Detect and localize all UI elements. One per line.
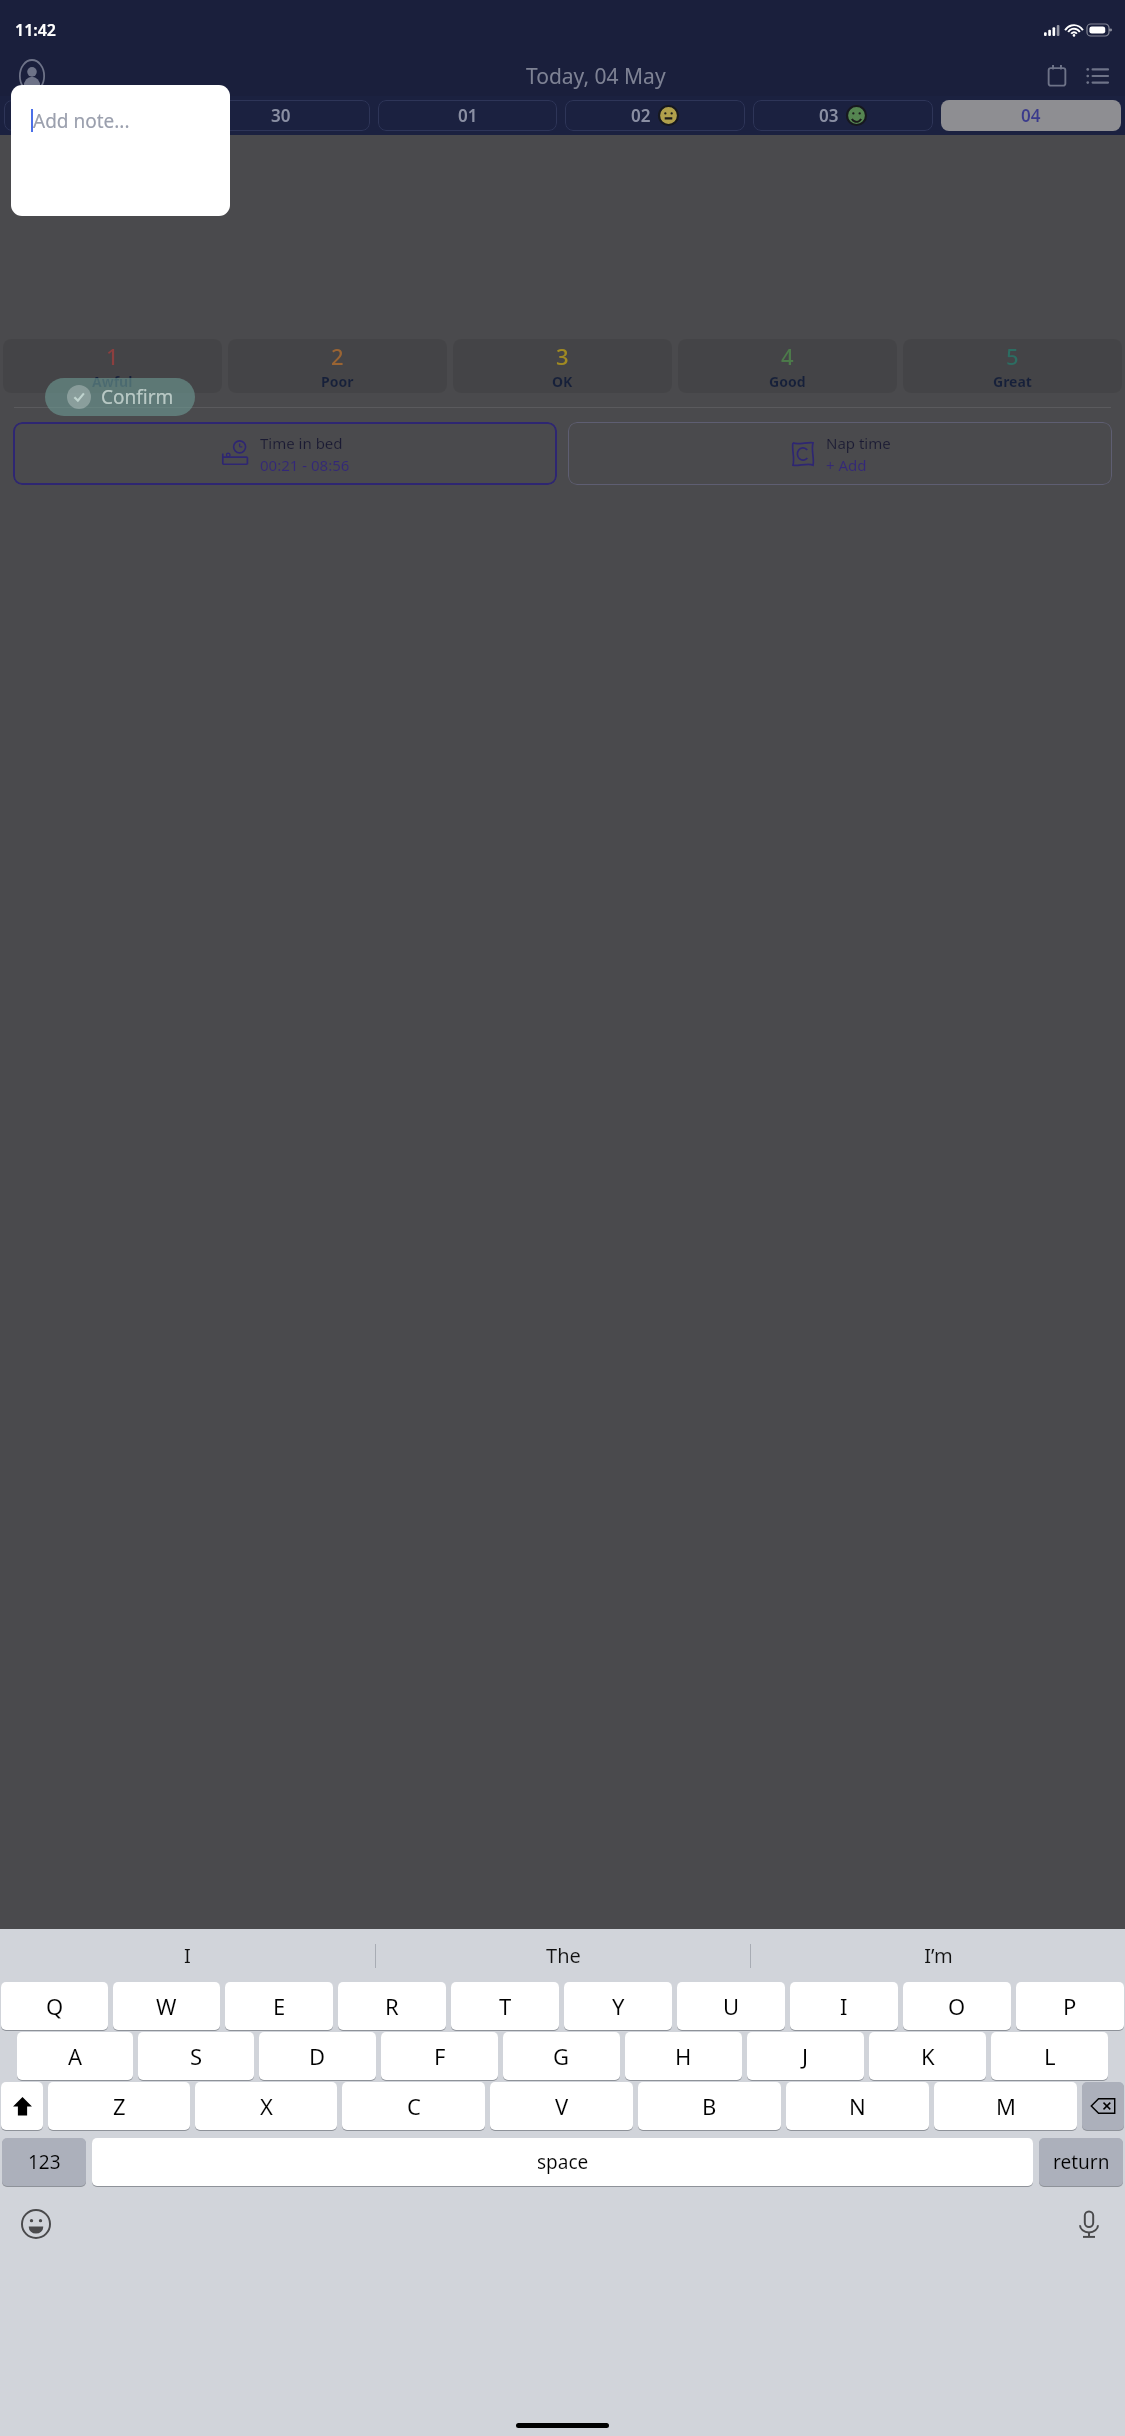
button[interactable]: 5 <box>903 339 1122 393</box>
staticText: S <box>190 2041 203 2071</box>
staticText: D <box>309 2041 326 2071</box>
button[interactable]: C <box>342 2082 485 2130</box>
staticText: Good <box>769 372 806 391</box>
button[interactable]: I’m <box>751 1929 1125 1982</box>
staticText: X <box>260 2091 273 2121</box>
staticText: G <box>553 2041 570 2071</box>
staticText: I’m <box>924 1942 953 1969</box>
staticText: T <box>499 1991 512 2021</box>
staticText: 29 <box>84 104 104 127</box>
button[interactable]: Confirm <box>45 378 195 416</box>
button[interactable]: The <box>376 1929 750 1982</box>
button[interactable]: N <box>786 2082 929 2130</box>
staticText: O <box>948 1991 966 2021</box>
button[interactable]: 04 <box>941 100 1121 131</box>
staticText: E <box>273 1991 286 2021</box>
staticText: 01 <box>458 104 478 127</box>
staticText: Confirm <box>101 384 174 410</box>
staticText: Awful <box>92 372 133 391</box>
staticText: U <box>723 1991 740 2021</box>
staticText: L <box>1044 2041 1056 2071</box>
staticText: 03 <box>819 104 839 127</box>
button[interactable]: Shift <box>1 2082 43 2130</box>
staticText: Great <box>993 372 1032 391</box>
button[interactable]: V <box>490 2082 633 2130</box>
staticText: The <box>546 1942 581 1969</box>
button[interactable]: P <box>1016 1982 1124 2030</box>
button[interactable]: A <box>17 2032 133 2080</box>
button[interactable]: H <box>625 2032 742 2080</box>
button[interactable]: 3 <box>453 339 672 393</box>
button[interactable]: K <box>869 2032 986 2080</box>
staticText: + Add <box>826 455 867 475</box>
button[interactable]: Add note... <box>11 85 230 216</box>
button[interactable]: 1 <box>3 339 222 393</box>
staticText: H <box>675 2041 692 2071</box>
button[interactable]: 01 <box>378 100 557 131</box>
staticText: return <box>1053 2149 1110 2175</box>
button[interactable]: 03 <box>753 100 933 131</box>
button[interactable]: Z <box>48 2082 190 2130</box>
button[interactable]: Nap time <box>568 422 1112 485</box>
button[interactable]: D <box>259 2032 376 2080</box>
staticText: OK <box>552 372 573 391</box>
button[interactable]: Y <box>564 1982 672 2030</box>
button[interactable]: J <box>747 2032 864 2080</box>
staticText: Nap time <box>826 433 891 453</box>
staticText: 04 <box>1021 104 1041 127</box>
button[interactable]: Emoji <box>14 2202 58 2246</box>
staticText: 4 <box>781 341 794 371</box>
button[interactable]: Calendar <box>1037 56 1077 96</box>
staticText: M <box>996 2091 1016 2121</box>
button[interactable]: 30 <box>191 100 370 131</box>
button[interactable]: T <box>451 1982 559 2030</box>
staticText: 00:21 - 08:56 <box>260 455 350 475</box>
button[interactable]: I <box>790 1982 898 2030</box>
button[interactable]: 123 <box>2 2138 86 2186</box>
button[interactable]: X <box>195 2082 337 2130</box>
button[interactable]: Q <box>1 1982 108 2030</box>
button[interactable]: O <box>903 1982 1011 2030</box>
staticText: F <box>434 2041 446 2071</box>
button[interactable]: 29 <box>4 100 183 131</box>
button[interactable]: U <box>677 1982 785 2030</box>
button[interactable]: M <box>934 2082 1077 2130</box>
staticText: 1 <box>106 341 119 371</box>
button[interactable]: Dictate <box>1067 2202 1111 2246</box>
staticText: Time in bed <box>260 433 343 453</box>
staticText: K <box>921 2041 935 2071</box>
button[interactable]: 02 <box>565 100 745 131</box>
button[interactable]: F <box>381 2032 498 2080</box>
staticText: N <box>849 2091 866 2121</box>
staticText: Y <box>612 1991 625 2021</box>
staticText: I <box>840 1991 848 2021</box>
button[interactable]: 4 <box>678 339 897 393</box>
staticText: Poor <box>321 372 354 391</box>
staticText: Today, 04 May <box>526 62 666 91</box>
button[interactable]: B <box>638 2082 781 2130</box>
button[interactable]: R <box>338 1982 446 2030</box>
button[interactable]: W <box>113 1982 220 2030</box>
staticText: space <box>537 2149 589 2175</box>
button[interactable]: E <box>225 1982 333 2030</box>
button[interactable]: 2 <box>228 339 447 393</box>
button[interactable]: G <box>503 2032 620 2080</box>
button[interactable]: Backspace <box>1082 2082 1124 2130</box>
button[interactable]: I <box>0 1929 375 1982</box>
button[interactable]: L <box>991 2032 1108 2080</box>
staticText: 123 <box>28 2149 61 2175</box>
button[interactable]: S <box>138 2032 254 2080</box>
staticText: Add note... <box>33 108 130 134</box>
staticText: P <box>1063 1991 1077 2021</box>
staticText: Z <box>113 2091 126 2121</box>
button[interactable]: space <box>92 2138 1033 2186</box>
staticText: W <box>156 1991 177 2021</box>
staticText: 02 <box>631 104 651 127</box>
button[interactable]: Time in bed <box>13 422 557 485</box>
staticText: 11:42 <box>15 19 57 41</box>
button[interactable]: return <box>1039 2138 1123 2186</box>
staticText: 3 <box>556 341 569 371</box>
staticText: R <box>385 1991 399 2021</box>
button[interactable]: List <box>1077 56 1117 96</box>
button[interactable]: Profile <box>10 56 54 96</box>
